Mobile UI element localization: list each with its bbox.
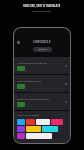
button[interactable] xyxy=(51,119,63,125)
staticText: Translate text with one tap xyxy=(17,61,47,64)
button[interactable]: Hide sensitive photos xyxy=(14,75,70,92)
button[interactable] xyxy=(36,119,50,125)
button[interactable] xyxy=(42,126,58,132)
staticText: Secure and Private xyxy=(32,10,52,13)
staticText: CHRONICLE xyxy=(33,40,51,44)
staticText: UPLOAD xyxy=(38,48,47,51)
button[interactable]: Powerful photo editing tools xyxy=(14,93,70,110)
button[interactable] xyxy=(17,119,25,125)
staticText: Powerful photo editing tools xyxy=(17,97,49,100)
button[interactable] xyxy=(17,126,25,132)
button[interactable] xyxy=(26,126,41,132)
button[interactable]: UPLOAD xyxy=(33,47,52,52)
button[interactable] xyxy=(26,133,52,139)
staticText: Hide sensitive photos xyxy=(17,79,42,82)
button[interactable]: Translate text with one tap xyxy=(14,57,70,74)
staticText: OBSCURE, EDIT & TRANSLATE xyxy=(23,4,61,8)
button[interactable] xyxy=(26,119,35,125)
staticText: Colors, text or effects xyxy=(17,114,39,117)
button[interactable] xyxy=(17,133,25,139)
